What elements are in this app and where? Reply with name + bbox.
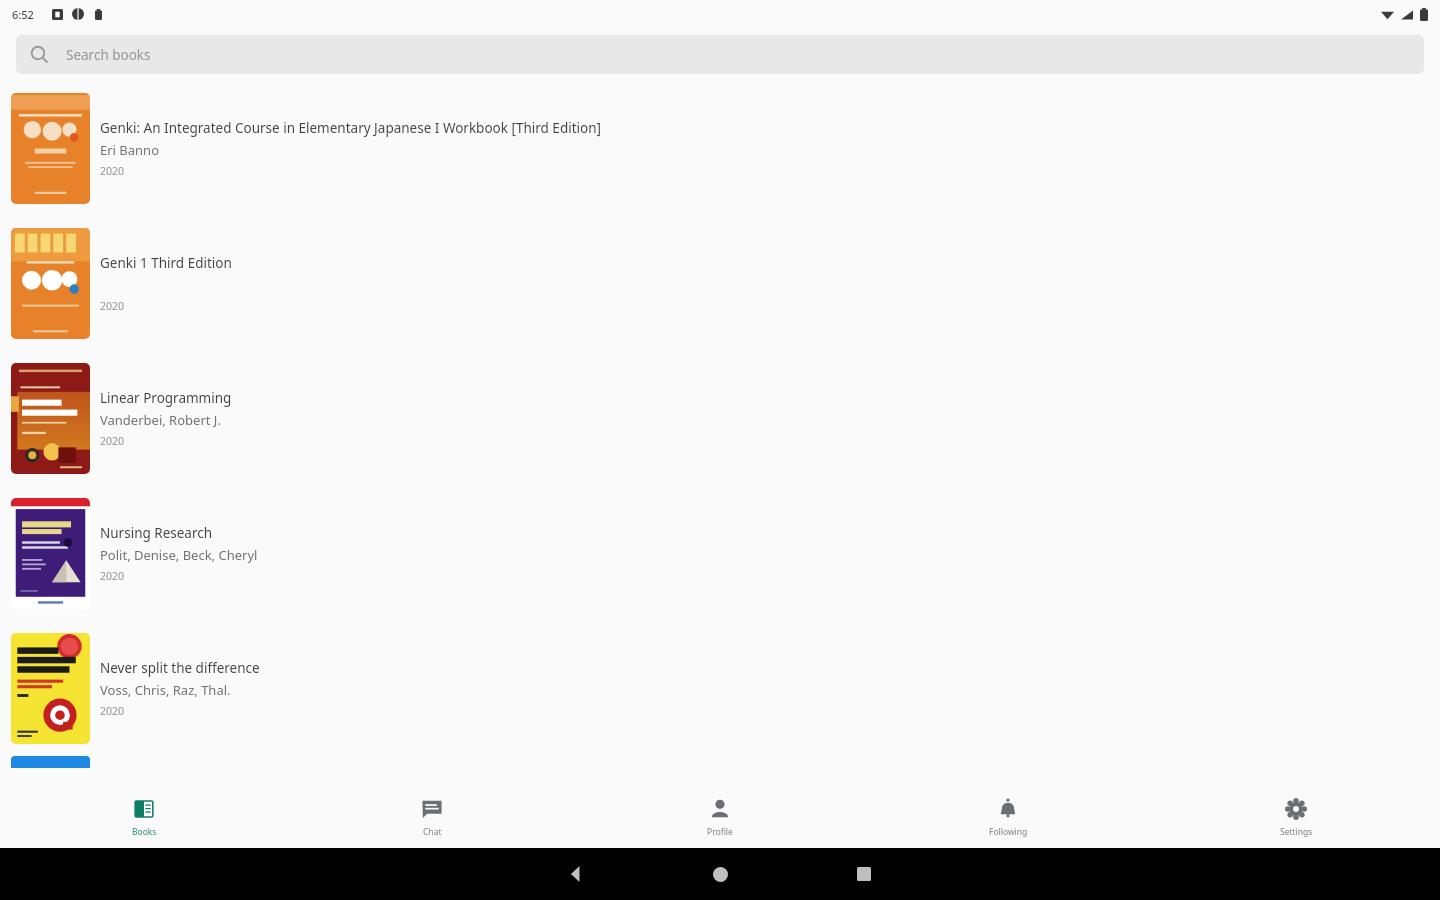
button[interactable]: Books: [0, 786, 288, 848]
staticText: Nursing Research: [100, 524, 213, 542]
staticText: Settings: [1280, 826, 1313, 838]
other: Chat: [420, 797, 444, 821]
other: Home: [713, 867, 728, 882]
button[interactable]: Genki 1 Third Edition: [0, 216, 1440, 351]
other: Books: [132, 797, 156, 821]
button[interactable]: Genki: An Integrated Course in Elementar…: [0, 81, 1440, 216]
other: Recents: [857, 867, 871, 881]
button[interactable]: Never split the difference: [0, 621, 1440, 756]
other: Settings: [1284, 797, 1308, 821]
staticText: Following: [989, 826, 1028, 838]
staticText: Books: [132, 826, 157, 838]
button[interactable]: Following: [864, 786, 1152, 848]
staticText: Linear Programming: [100, 389, 232, 407]
staticText: Polit, Denise, Beck, Cheryl: [100, 546, 258, 564]
staticText: Voss, Chris, Raz, Thal.: [100, 681, 231, 699]
button[interactable]: Nursing Research: [0, 486, 1440, 621]
other: Following: [996, 797, 1020, 821]
other: Back: [568, 866, 584, 882]
button[interactable]: Settings: [1152, 786, 1440, 848]
staticText: Profile: [707, 826, 733, 838]
button[interactable]: Linear Programming: [0, 351, 1440, 486]
staticText: 2020: [100, 434, 125, 448]
button[interactable]: Profile: [576, 786, 864, 848]
staticText: 2020: [100, 164, 125, 178]
staticText: 2020: [100, 704, 125, 718]
staticText: 6:52: [12, 7, 34, 22]
staticText: Genki 1 Third Edition: [100, 254, 232, 272]
staticText: Chat: [423, 826, 442, 838]
staticText: Search books: [66, 46, 151, 64]
staticText: 2020: [100, 299, 125, 313]
staticText: Eri Banno: [100, 141, 160, 159]
button[interactable]: Chat: [288, 786, 576, 848]
button[interactable]: Search books: [16, 35, 1424, 74]
staticText: Vanderbei, Robert J.: [100, 411, 221, 429]
staticText: Never split the difference: [100, 659, 260, 677]
staticText: Genki: An Integrated Course in Elementar…: [100, 119, 601, 137]
staticText: 2020: [100, 569, 125, 583]
other: Profile: [708, 797, 732, 821]
